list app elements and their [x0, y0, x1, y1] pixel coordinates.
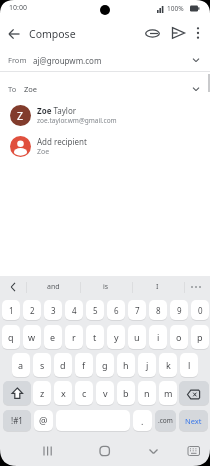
button[interactable]: f: [75, 353, 93, 377]
button[interactable]: [190, 23, 206, 44]
staticText: 9: [177, 305, 182, 316]
staticText: e: [50, 331, 56, 343]
button[interactable]: u: [128, 325, 146, 349]
staticText: Compose: [29, 27, 76, 41]
button[interactable]: n: [138, 381, 156, 405]
button[interactable]: 2: [23, 300, 41, 320]
button[interactable]: j: [138, 353, 156, 377]
staticText: p: [197, 331, 203, 343]
staticText: Zoe: [24, 84, 38, 94]
button[interactable]: From: [0, 48, 210, 72]
staticText: a: [18, 359, 24, 371]
staticText: !#1: [11, 415, 23, 426]
button[interactable]: v: [96, 381, 114, 405]
staticText: s: [40, 359, 45, 371]
button[interactable]: w: [23, 325, 41, 349]
button[interactable]: [36, 441, 59, 461]
button[interactable]: [184, 443, 203, 459]
button[interactable]: To: [0, 72, 210, 98]
staticText: d: [60, 359, 66, 371]
button[interactable]: and: [27, 278, 79, 296]
staticText: 2: [30, 305, 35, 316]
button[interactable]: z: [33, 381, 51, 405]
button[interactable]: 6: [107, 300, 125, 320]
staticText: 4: [72, 305, 77, 316]
button[interactable]: 5: [86, 300, 104, 320]
button[interactable]: [168, 23, 189, 44]
staticText: is: [103, 282, 109, 292]
staticText: i: [157, 331, 160, 343]
button[interactable]: [142, 23, 163, 44]
button[interactable]: .: [133, 410, 152, 431]
staticText: From: [8, 55, 27, 65]
staticText: 1: [9, 305, 14, 316]
staticText: f: [82, 359, 86, 371]
staticText: j: [146, 359, 149, 371]
button[interactable]: r: [65, 325, 83, 349]
button[interactable]: 1: [2, 300, 20, 320]
button[interactable]: i: [149, 325, 167, 349]
button[interactable]: s: [33, 353, 51, 377]
button[interactable]: [179, 381, 209, 405]
button[interactable]: [3, 381, 31, 405]
staticText: 6: [114, 305, 119, 316]
staticText: c: [82, 387, 87, 399]
button[interactable]: [93, 441, 116, 461]
button[interactable]: is: [80, 278, 131, 296]
staticText: o: [176, 331, 182, 343]
button[interactable]: [4, 24, 24, 44]
button[interactable]: y: [107, 325, 125, 349]
button[interactable]: x: [54, 381, 72, 405]
button[interactable]: !#1: [3, 410, 31, 431]
staticText: v: [103, 387, 108, 399]
button[interactable]: l: [180, 353, 198, 377]
button[interactable]: q: [2, 325, 20, 349]
staticText: 5: [93, 305, 98, 316]
button[interactable]: g: [96, 353, 114, 377]
button[interactable]: @: [34, 410, 53, 431]
button[interactable]: p: [191, 325, 209, 349]
button[interactable]: o: [170, 325, 188, 349]
button[interactable]: m: [159, 381, 177, 405]
staticText: r: [72, 331, 76, 343]
staticText: w: [28, 331, 36, 343]
staticText: 0: [198, 305, 203, 316]
button[interactable]: Add recipient: [0, 133, 210, 161]
button[interactable]: 0: [191, 300, 209, 320]
button[interactable]: d: [54, 353, 72, 377]
staticText: aj@groupwm.com: [33, 55, 102, 66]
staticText: Zoe: [37, 147, 50, 157]
staticText: y: [114, 331, 119, 343]
button[interactable]: .com: [155, 410, 176, 431]
staticText: I: [156, 282, 159, 292]
button[interactable]: c: [75, 381, 93, 405]
staticText: m: [164, 387, 173, 399]
button[interactable]: 8: [149, 300, 167, 320]
button[interactable]: e: [44, 325, 62, 349]
staticText: Add recipient: [37, 136, 87, 147]
staticText: l: [188, 359, 191, 371]
staticText: To: [8, 84, 17, 94]
button[interactable]: Next: [179, 410, 208, 431]
button[interactable]: h: [117, 353, 135, 377]
staticText: h: [123, 359, 129, 371]
button[interactable]: t: [86, 325, 104, 349]
staticText: k: [166, 359, 171, 371]
button[interactable]: 9: [170, 300, 188, 320]
staticText: .: [141, 415, 144, 427]
button[interactable]: [142, 441, 165, 461]
button[interactable]: k: [159, 353, 177, 377]
button[interactable]: I: [132, 278, 183, 296]
button[interactable]: 7: [128, 300, 146, 320]
button[interactable]: [2, 278, 24, 296]
staticText: zoe.taylor.wm@gmail.com: [37, 116, 117, 125]
button[interactable]: Z: [0, 102, 210, 131]
button[interactable]: 4: [65, 300, 83, 320]
button[interactable]: 3: [44, 300, 62, 320]
staticText: .com: [158, 416, 173, 425]
button[interactable]: a: [12, 353, 30, 377]
staticText: 3: [51, 305, 56, 316]
staticText: @: [39, 414, 48, 427]
button[interactable]: b: [117, 381, 135, 405]
